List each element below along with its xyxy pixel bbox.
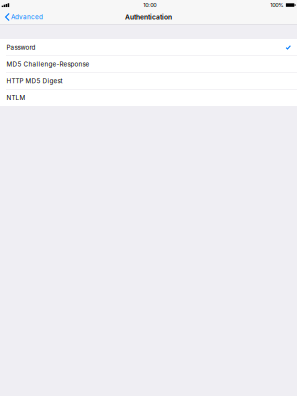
staticText: 10:00 <box>143 2 156 8</box>
button[interactable]: Advanced <box>0 11 47 23</box>
staticText: MD5 Challenge-Response <box>6 60 89 68</box>
button[interactable]: HTTP MD5 Digest <box>0 72 297 89</box>
staticText: HTTP MD5 Digest <box>6 77 62 85</box>
staticText: Password <box>6 44 35 51</box>
staticText: Advanced <box>11 13 43 21</box>
staticText: 100% <box>270 2 283 8</box>
staticText: NTLM <box>6 94 25 101</box>
staticText: Authentication <box>125 13 172 21</box>
button[interactable]: Password <box>0 39 297 56</box>
button[interactable]: NTLM <box>0 89 297 106</box>
button[interactable]: MD5 Challenge-Response <box>0 56 297 73</box>
